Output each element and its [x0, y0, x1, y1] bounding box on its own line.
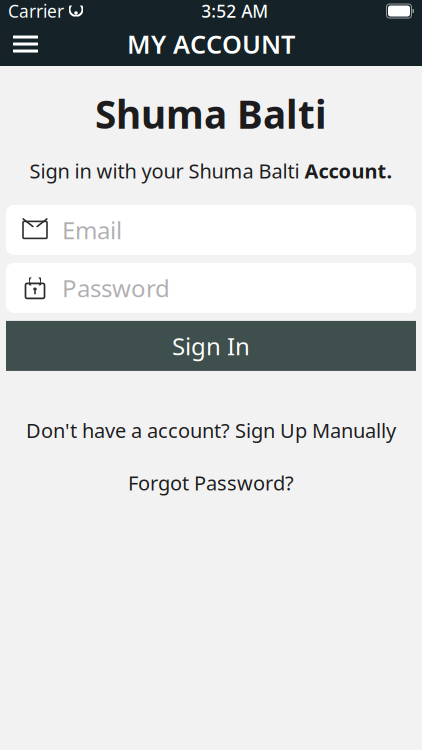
staticText: Password [62, 272, 170, 304]
button[interactable]: Email [6, 205, 416, 255]
button[interactable]: Don't have a account? Sign Up Manually [6, 411, 416, 449]
button[interactable]: Password [6, 263, 416, 313]
staticText: MY ACCOUNT [127, 27, 295, 61]
staticText: Account. [304, 157, 392, 184]
button[interactable]: Sign In [6, 321, 416, 371]
staticText: Forgot Password? [128, 469, 294, 496]
staticText: Don't have a account? Sign Up Manually [26, 417, 396, 443]
button[interactable]: Menu [0, 25, 51, 62]
staticText: Shuma Balti [95, 88, 327, 139]
button[interactable]: Forgot Password? [108, 463, 314, 502]
staticText: Carrier [8, 0, 64, 22]
staticText: Sign in with your Shuma Balti [29, 157, 304, 184]
staticText: Email [62, 214, 122, 246]
staticText: 3:52 AM [201, 0, 268, 22]
staticText: Sign In [172, 330, 250, 362]
